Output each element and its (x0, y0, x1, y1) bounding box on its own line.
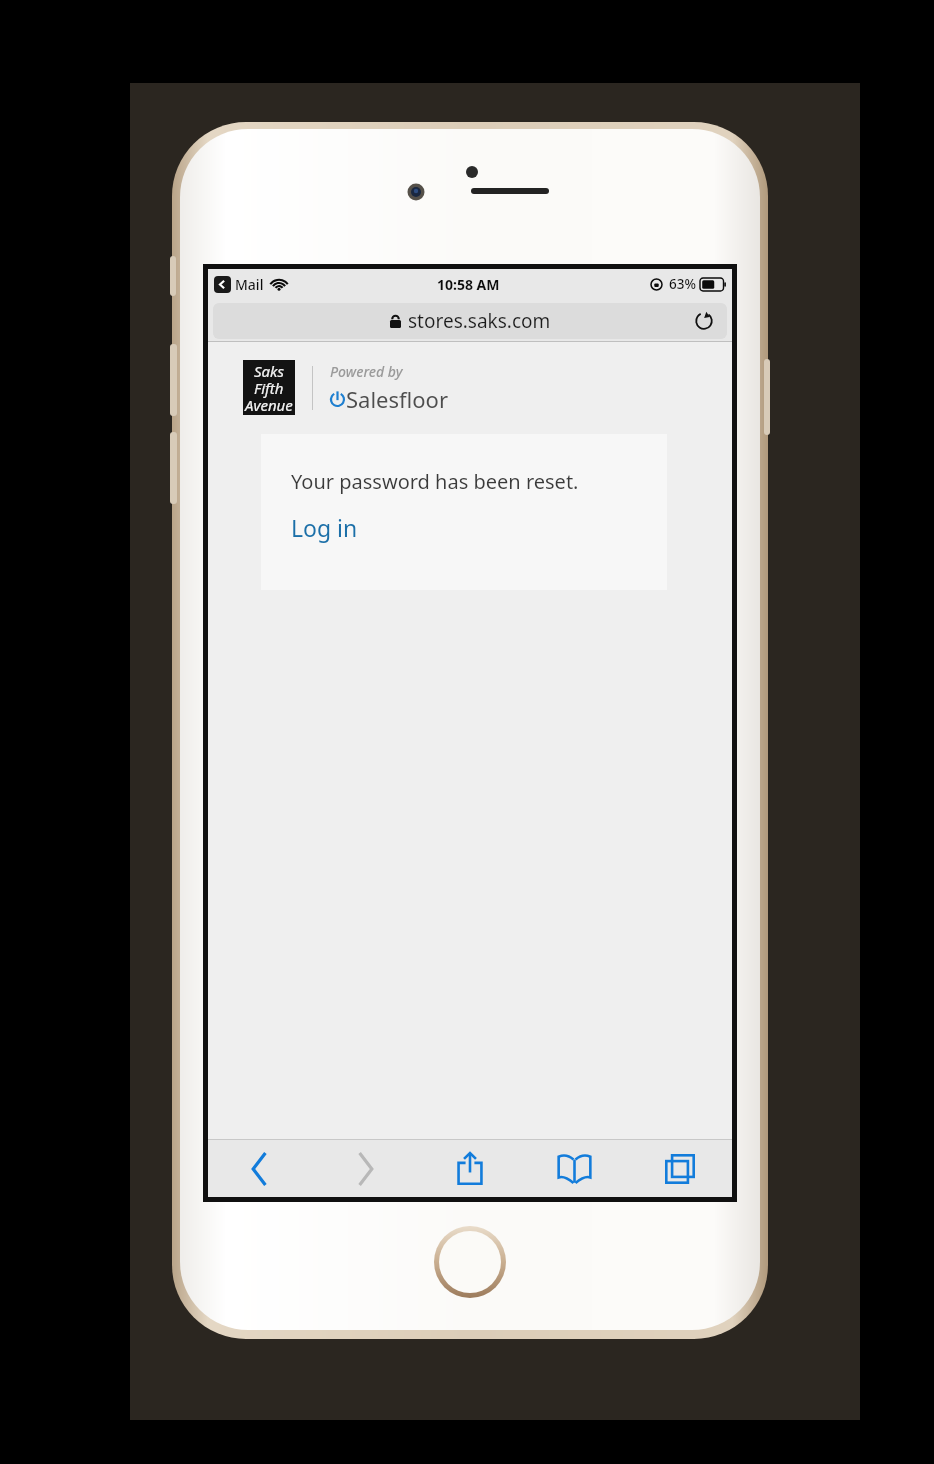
staticText: Avenue (245, 395, 293, 415)
staticText: Fifth (254, 378, 284, 398)
button[interactable]: stores.saks.com (213, 303, 727, 339)
button[interactable]: Saks (243, 360, 295, 415)
button[interactable]: Forward (312, 1140, 417, 1197)
button[interactable]: Home (434, 1226, 506, 1298)
staticText: 10:58 AM (437, 275, 500, 294)
staticText: Powered by (330, 362, 403, 381)
staticText: Your password has been reset. (291, 468, 579, 495)
button[interactable]: Log in (291, 512, 358, 543)
button[interactable]: Tabs (627, 1140, 732, 1197)
button[interactable]: Back (208, 1140, 312, 1197)
staticText: 63% (669, 275, 696, 293)
button[interactable]: Bookmarks (522, 1140, 627, 1197)
staticText: Log in (291, 512, 358, 543)
staticText: Saks (254, 361, 285, 381)
button[interactable]: Share (417, 1140, 522, 1197)
staticText: Salesfloor (346, 384, 448, 414)
button[interactable]: Mail (214, 275, 264, 294)
button[interactable]: Reload (691, 308, 717, 334)
staticText: stores.saks.com (408, 308, 551, 334)
staticText: Mail (235, 275, 264, 294)
